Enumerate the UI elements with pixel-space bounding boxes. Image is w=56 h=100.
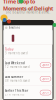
staticText: 12 moments saved	[5, 65, 30, 69]
button[interactable]: Earlier This Year	[3, 85, 52, 99]
staticText: 214 moments	[5, 93, 24, 96]
staticText: 3 moments saved	[5, 51, 28, 55]
staticText: 48 moments saved	[5, 79, 30, 82]
staticText: Today	[5, 48, 13, 51]
staticText: Last Summer	[5, 75, 23, 79]
staticText: Open	[41, 77, 49, 81]
staticText: Earlier This Year	[5, 89, 28, 92]
staticText: Open	[41, 91, 49, 94]
staticText: Timeline	[8, 26, 20, 29]
staticText: Last Weekend	[5, 61, 25, 65]
staticText: Time Loop to Moments of Delight	[3, 0, 53, 12]
staticText: Open	[41, 63, 49, 67]
button[interactable]: Today	[3, 44, 52, 58]
staticText: Relive the memories you love	[7, 8, 49, 11]
button[interactable]: Last Weekend	[3, 58, 52, 72]
button[interactable]: Last Summer	[3, 72, 52, 86]
staticText: one beautiful moment at a time.	[5, 11, 50, 14]
